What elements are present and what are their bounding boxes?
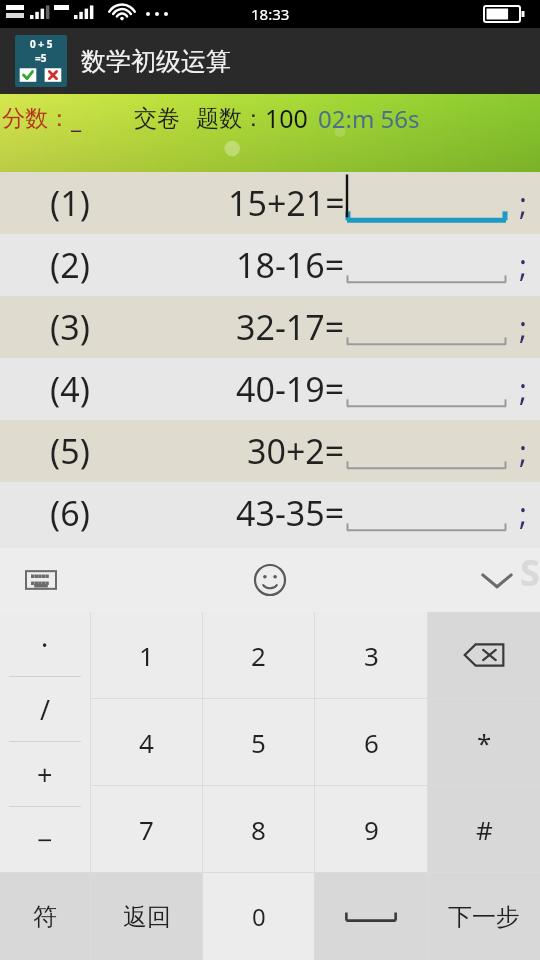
button[interactable]: (4) xyxy=(0,358,540,420)
staticText: − xyxy=(37,821,53,858)
staticText: 4 xyxy=(139,725,154,760)
staticText: 8 xyxy=(251,812,266,847)
button[interactable]: 5 xyxy=(203,699,314,785)
button[interactable]: − xyxy=(0,807,90,872)
staticText: (1) xyxy=(50,180,90,226)
button[interactable]: 符 xyxy=(0,873,90,960)
button[interactable]: + xyxy=(0,742,90,807)
button[interactable]: 7 xyxy=(91,786,202,872)
staticText: 9 xyxy=(364,812,379,847)
button[interactable]: 4 xyxy=(91,699,202,785)
staticText: 30+2= xyxy=(247,428,345,474)
button[interactable]: 0 xyxy=(203,873,314,960)
staticText: 2 xyxy=(251,638,266,673)
staticText: 返回 xyxy=(123,902,171,932)
button[interactable]: * xyxy=(428,699,540,785)
staticText: 0 xyxy=(252,900,266,933)
staticText: ; xyxy=(519,369,528,410)
staticText: 7 xyxy=(139,812,154,847)
staticText: ; xyxy=(519,493,528,534)
button[interactable]: 3 xyxy=(315,612,427,698)
button[interactable]: 1 xyxy=(91,612,202,698)
button[interactable]: · xyxy=(0,612,90,677)
button[interactable]: # xyxy=(428,786,540,872)
staticText: (4) xyxy=(50,366,90,412)
staticText: 18-16= xyxy=(236,242,345,288)
staticText: S xyxy=(520,548,540,597)
staticText: * xyxy=(477,725,492,760)
staticText: # xyxy=(476,812,493,847)
staticText: ; xyxy=(519,431,528,472)
button[interactable]: 返回 xyxy=(91,873,202,960)
staticText: 43-35= xyxy=(236,490,345,536)
staticText: 5 xyxy=(251,725,266,760)
staticText: ; xyxy=(519,183,528,224)
button[interactable]: Delete xyxy=(428,612,540,698)
staticText: (6) xyxy=(50,490,90,536)
staticText: 符 xyxy=(33,902,57,932)
staticText: 数学初级运算 xyxy=(81,46,231,77)
button[interactable]: Hide keyboard xyxy=(476,559,518,601)
button[interactable]: Space xyxy=(315,873,427,960)
staticText: (5) xyxy=(50,428,90,474)
button[interactable]: 下一步 xyxy=(428,873,540,960)
button[interactable]: 9 xyxy=(315,786,427,872)
staticText: 下一步 xyxy=(448,902,520,932)
staticText: 15+21= xyxy=(228,180,345,226)
button[interactable]: (5) xyxy=(0,420,540,482)
staticText: 100 xyxy=(265,101,308,135)
staticText: =5 xyxy=(35,51,47,65)
staticText: 6 xyxy=(364,725,379,760)
staticText: (3) xyxy=(50,304,90,350)
button[interactable]: App icon xyxy=(15,35,67,87)
button[interactable]: Emoji xyxy=(253,563,287,597)
staticText: ; xyxy=(519,245,528,286)
staticText: ; xyxy=(519,307,528,348)
staticText: 3 xyxy=(364,638,379,673)
staticText: 分数： xyxy=(2,104,71,133)
staticText: 交卷 xyxy=(134,104,180,133)
staticText: _ xyxy=(71,103,82,134)
button[interactable]: (2) xyxy=(0,234,540,296)
button[interactable]: Switch keyboard xyxy=(24,563,58,597)
staticText: 题数： xyxy=(196,104,265,133)
staticText: / xyxy=(40,691,51,728)
staticText: 1 xyxy=(139,638,154,673)
staticText: + xyxy=(37,756,53,793)
staticText: · xyxy=(41,626,49,663)
button[interactable]: (1) xyxy=(0,172,540,234)
staticText: 0 + 5 xyxy=(30,37,53,51)
button[interactable]: (3) xyxy=(0,296,540,358)
button[interactable]: (6) xyxy=(0,482,540,544)
button[interactable]: 2 xyxy=(203,612,314,698)
staticText: (2) xyxy=(50,242,90,288)
button[interactable]: / xyxy=(0,677,90,742)
staticText: 02:m 56s xyxy=(318,102,420,135)
staticText: 18:33 xyxy=(251,4,290,24)
button[interactable]: 交卷 xyxy=(134,104,180,133)
staticText: 40-19= xyxy=(236,366,345,412)
staticText: 32-17= xyxy=(236,304,345,350)
button[interactable]: 6 xyxy=(315,699,427,785)
button[interactable]: 8 xyxy=(203,786,314,872)
